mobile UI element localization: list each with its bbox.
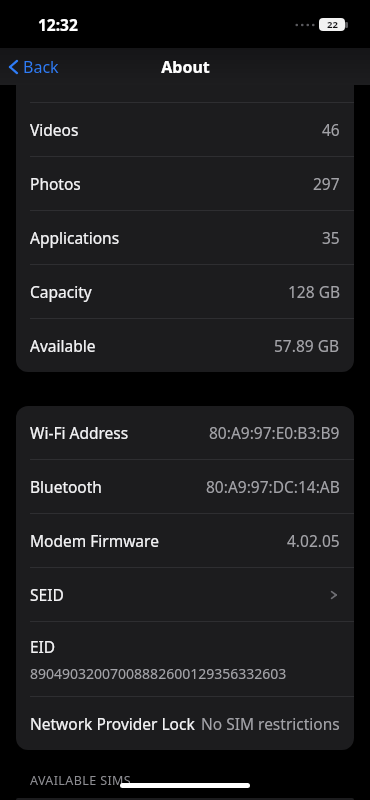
staticText: Videos — [30, 119, 79, 140]
staticText: 46 — [322, 119, 340, 140]
staticText: 80:A9:97:E0:B3:B9 — [209, 422, 340, 443]
staticText: 22 — [327, 18, 338, 31]
staticText: EID — [30, 636, 56, 657]
staticText: No SIM restrictions — [201, 713, 340, 734]
staticText: About — [161, 56, 210, 78]
staticText: 297 — [313, 173, 340, 194]
staticText: Bluetooth — [30, 476, 102, 497]
button[interactable]: Bluetooth — [16, 460, 354, 513]
button[interactable]: Applications — [16, 211, 354, 264]
button[interactable]: SEID — [16, 568, 354, 621]
button[interactable]: Photos — [16, 157, 354, 210]
staticText: 4.02.05 — [287, 530, 340, 551]
staticText: Wi-Fi Address — [30, 422, 129, 443]
button[interactable]: Videos — [16, 103, 354, 156]
staticText: SEID — [30, 584, 64, 605]
staticText: Modem Firmware — [30, 530, 159, 551]
staticText: Capacity — [30, 281, 92, 302]
staticText: 89049032007008882600129356332603 — [30, 664, 287, 683]
staticText: Photos — [30, 173, 81, 194]
button[interactable]: EID — [16, 622, 354, 696]
staticText: Applications — [30, 227, 120, 248]
staticText: 35 — [322, 227, 340, 248]
staticText: Back — [23, 56, 59, 78]
staticText: 57.89 GB — [274, 335, 340, 356]
button[interactable]: Modem Firmware — [16, 514, 354, 567]
other: Open SEID — [328, 589, 340, 601]
staticText: 12:32 — [38, 14, 78, 35]
staticText: AVAILABLE SIMS — [30, 772, 132, 789]
button[interactable]: Available — [16, 319, 354, 372]
staticText: 128 GB — [288, 281, 340, 302]
staticText: 80:A9:97:DC:14:AB — [206, 476, 340, 497]
staticText: Available — [30, 335, 96, 356]
staticText: Network Provider Lock — [30, 713, 195, 734]
button[interactable]: Network Provider Lock — [16, 697, 354, 750]
button[interactable]: Capacity — [16, 265, 354, 318]
button[interactable]: Wi-Fi Address — [16, 406, 354, 459]
button[interactable]: Back — [0, 52, 69, 82]
